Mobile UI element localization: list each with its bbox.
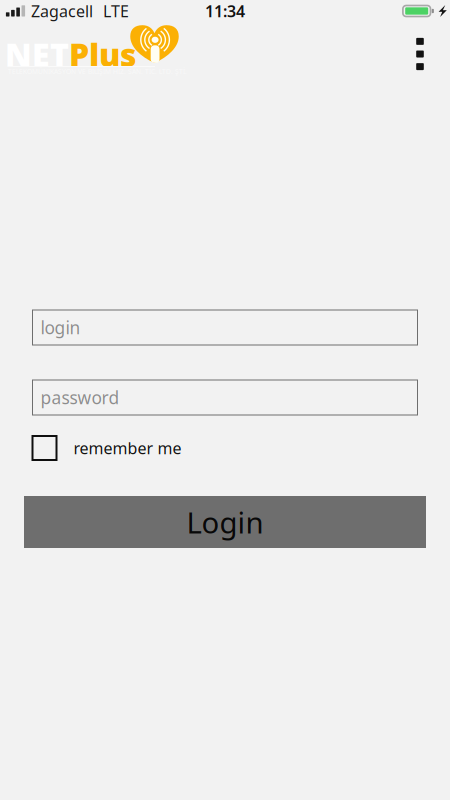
staticText: remember me xyxy=(73,437,181,459)
button[interactable]: remember me xyxy=(32,436,181,460)
staticText: Plus xyxy=(69,33,137,75)
staticText: LTE xyxy=(103,0,129,22)
button[interactable]: login xyxy=(32,310,417,345)
staticText: NET xyxy=(5,33,69,75)
staticText: Login xyxy=(186,502,263,541)
staticText: password xyxy=(40,386,119,409)
button[interactable]: password xyxy=(32,380,417,415)
button[interactable]: Login xyxy=(24,496,426,548)
staticText: Zagacell xyxy=(31,0,93,22)
staticText: login xyxy=(40,316,80,339)
button[interactable]: More options xyxy=(402,27,438,81)
staticText: 11:34 xyxy=(205,0,245,22)
